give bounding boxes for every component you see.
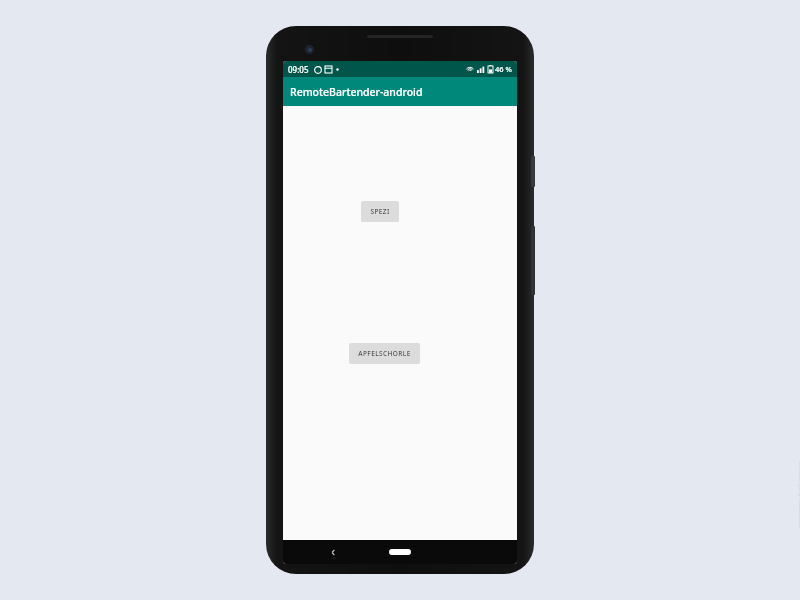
staticText: RemoteBartender-android [290, 85, 423, 99]
staticText: Creator: Jörg Clausnitzer [797, 461, 800, 530]
button[interactable]: SPEZI [361, 201, 399, 222]
button[interactable]: Home [383, 545, 417, 559]
staticText: 46 % [495, 64, 512, 74]
staticText: SPEZI [370, 207, 390, 216]
button[interactable]: RemoteBartender-android [283, 77, 517, 106]
button[interactable]: Back [324, 543, 342, 561]
button[interactable]: APFELSCHORLE [349, 343, 420, 364]
staticText: 09:05 [288, 64, 309, 75]
staticText: APFELSCHORLE [358, 349, 411, 358]
